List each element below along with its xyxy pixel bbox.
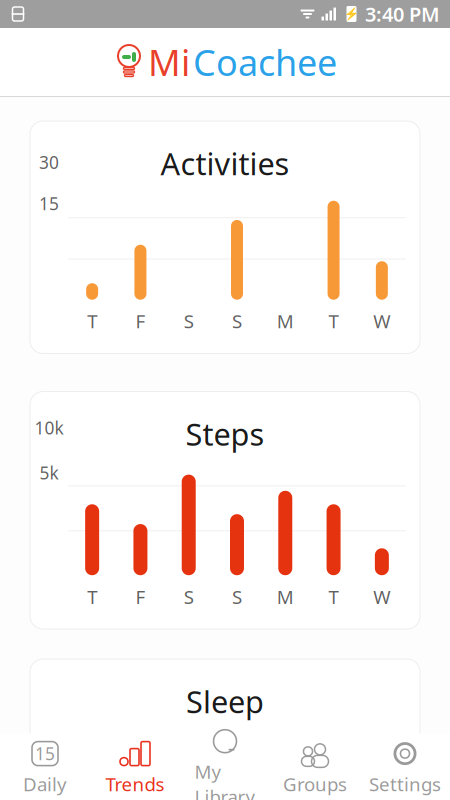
staticText: Steps: [185, 413, 264, 454]
staticText: M: [277, 584, 294, 609]
staticText: W: [373, 584, 390, 609]
button[interactable]: 15: [0, 734, 90, 800]
staticText: 15: [35, 742, 55, 765]
staticText: Sleep: [186, 681, 264, 722]
staticText: F: [135, 309, 145, 333]
staticText: T: [329, 584, 339, 609]
staticText: S: [184, 309, 194, 333]
button[interactable]: Trends: [90, 734, 180, 800]
staticText: 3:40 PM: [365, 1, 440, 27]
staticText: M: [277, 309, 294, 333]
staticText: Trends: [105, 772, 164, 796]
staticText: ⚡: [344, 7, 359, 21]
staticText: S: [232, 309, 242, 333]
staticText: T: [87, 309, 97, 333]
staticText: S: [232, 584, 242, 609]
staticText: Activities: [160, 143, 289, 184]
staticText: Mi: [148, 38, 190, 86]
button[interactable]: Groups: [270, 734, 360, 800]
staticText: Daily: [23, 772, 67, 796]
staticText: 30: [39, 151, 59, 174]
staticText: T: [329, 309, 339, 333]
staticText: T: [87, 584, 97, 609]
staticText: 15: [39, 192, 59, 215]
staticText: W: [373, 309, 390, 333]
button[interactable]: My Library: [180, 721, 270, 800]
staticText: 10k: [34, 416, 63, 439]
button[interactable]: Settings: [360, 734, 450, 800]
staticText: 5k: [39, 461, 58, 484]
staticText: Settings: [369, 772, 441, 796]
staticText: Coachee: [193, 38, 337, 86]
staticText: Groups: [283, 772, 347, 796]
staticText: My Library: [194, 759, 255, 800]
staticText: F: [135, 584, 145, 609]
staticText: S: [184, 584, 194, 609]
